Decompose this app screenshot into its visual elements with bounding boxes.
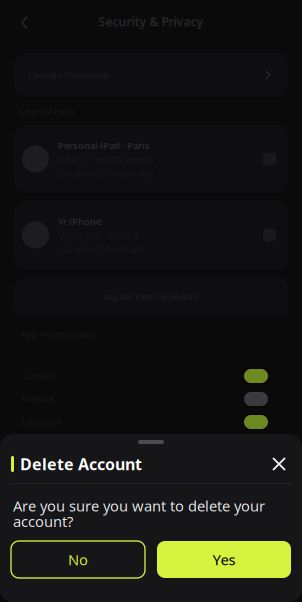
button[interactable]: No xyxy=(11,541,145,578)
staticText: Yr iPhone xyxy=(58,215,101,228)
staticText: Delete Account xyxy=(20,453,142,475)
staticText: Change Password xyxy=(28,69,109,81)
button[interactable]: Close xyxy=(267,452,291,476)
staticText: Yes xyxy=(212,550,235,569)
staticText: Personal iPad · Paris xyxy=(58,139,150,152)
staticText: Photos xyxy=(22,393,55,405)
staticText: Log Out From All Devices xyxy=(103,292,198,302)
staticText: No xyxy=(68,550,88,569)
button[interactable]: Yes xyxy=(157,541,291,578)
staticText: App Permissions xyxy=(20,328,97,340)
staticText: Are you sure you want to delete your acc… xyxy=(13,496,265,531)
staticText: Security & Privacy xyxy=(98,13,203,29)
staticText: Login Alerts xyxy=(20,105,75,117)
